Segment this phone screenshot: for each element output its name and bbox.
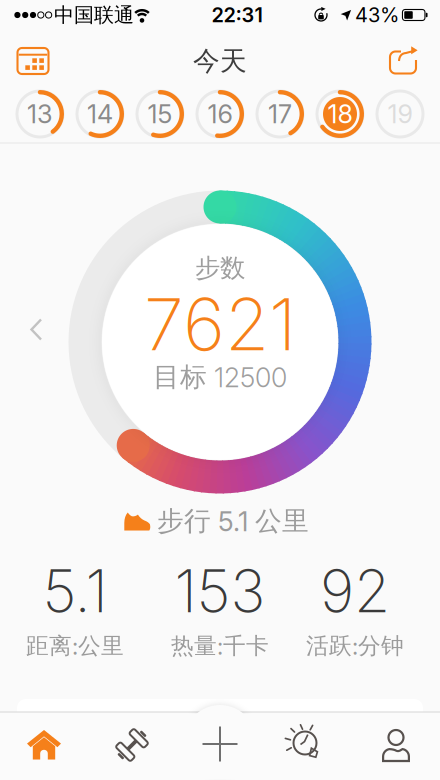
staticText: 13 <box>27 99 53 129</box>
button[interactable]: 16 <box>196 90 244 138</box>
button[interactable]: 19 <box>376 90 424 138</box>
staticText: 步行 5.1 公里 <box>157 505 309 537</box>
staticText: 22:31 <box>211 3 262 27</box>
staticText: 目标 12500 <box>153 361 287 393</box>
button[interactable] <box>202 726 237 761</box>
staticText: 热量:千卡 <box>171 632 269 660</box>
button[interactable]: 17 <box>256 90 304 138</box>
button[interactable] <box>27 730 61 760</box>
staticText: 活跃:分钟 <box>306 632 404 660</box>
button[interactable]: 15 <box>136 90 184 138</box>
staticText: 43% <box>355 3 399 27</box>
button[interactable] <box>115 729 149 760</box>
staticText: 今天 <box>193 45 247 77</box>
staticText: 中国联通 <box>54 3 134 27</box>
staticText: 16 <box>207 99 232 129</box>
staticText: 7621 <box>144 281 296 366</box>
button[interactable]: 18 <box>316 90 364 138</box>
staticText: 18 <box>327 99 352 129</box>
staticText: 步数 <box>195 252 245 283</box>
button[interactable] <box>31 319 42 340</box>
staticText: 5.1 <box>42 556 107 626</box>
button[interactable]: 14 <box>76 90 124 138</box>
button[interactable] <box>289 727 327 763</box>
button[interactable] <box>390 47 418 74</box>
staticText: 19 <box>387 99 412 129</box>
staticText: 15 <box>147 99 172 129</box>
staticText: 92 <box>320 556 390 626</box>
staticText: 17 <box>268 99 292 129</box>
button[interactable]: 13 <box>16 90 64 138</box>
staticText: 14 <box>87 99 113 129</box>
button[interactable] <box>382 730 410 762</box>
staticText: 153 <box>174 556 265 626</box>
staticText: 距离:公里 <box>26 632 124 660</box>
button[interactable] <box>16 46 50 76</box>
